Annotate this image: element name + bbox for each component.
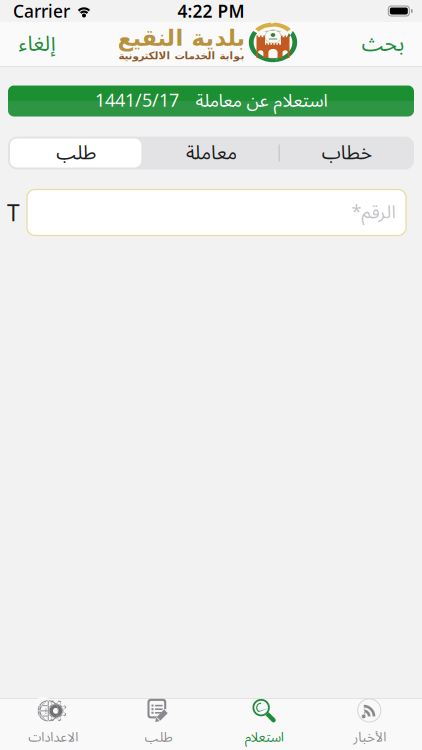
button[interactable]: طلب [105,699,211,750]
staticText: الاعدادات [28,723,78,750]
button[interactable]: معاملة [143,136,279,169]
button[interactable]: الاعدادات [0,699,105,750]
staticText: بحث [361,21,404,67]
staticText: استعلام [244,723,283,750]
button[interactable]: خطاب [279,136,414,169]
staticText: Carrier [13,0,70,22]
staticText: خطاب [321,133,371,173]
button[interactable]: إلغاء [4,22,69,66]
staticText: بلدية النقيع [117,25,245,51]
button[interactable]: استعلام [211,699,316,750]
staticText: معاملة [185,133,236,173]
button[interactable]: الأخبار [316,699,422,750]
button[interactable]: بحث [347,22,418,66]
button[interactable]: طلب [8,136,143,169]
staticText: بوابة الخدمات الالكترونية [118,50,244,62]
staticText: 1441/5/17 [95,82,179,120]
staticText: طلب [144,723,172,750]
staticText: استعلام عن معاملة [195,82,327,120]
staticText: طلب [56,133,96,173]
staticText: T [7,197,20,227]
staticText: 4:22 PM [177,0,244,22]
staticText: الأخبار [353,723,386,750]
staticText: الرقم* [351,193,395,231]
staticText: إلغاء [18,21,55,67]
